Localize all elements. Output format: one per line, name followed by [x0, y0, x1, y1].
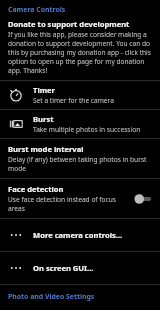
staticText: On screen GUI... — [33, 263, 94, 273]
button[interactable]: On screen GUI... — [0, 252, 160, 284]
staticText: Photo and Video Settings — [8, 292, 95, 301]
button[interactable]: Timer — [0, 81, 160, 109]
staticText: Camera Controls — [8, 5, 66, 14]
staticText: Timer — [33, 85, 55, 95]
staticText: Burst — [33, 114, 54, 124]
staticText: Face detection — [8, 184, 64, 194]
staticText: Donate to support development — [8, 19, 130, 29]
staticText: Burst mode interval — [8, 144, 84, 154]
staticText: Use face detection instead of focus area… — [8, 195, 128, 213]
button[interactable]: Face detection — [0, 179, 160, 218]
button[interactable]: More camera controls... — [0, 219, 160, 251]
other: Burst — [7, 115, 25, 133]
staticText: Set a timer for the camera — [33, 96, 114, 105]
button[interactable]: Burst — [0, 110, 160, 138]
staticText: If you like this app, please consider ma… — [8, 30, 152, 75]
button[interactable]: Donate to support development — [0, 17, 160, 80]
staticText: More camera controls... — [33, 230, 123, 240]
staticText: Delay (if any) between taking photos in … — [8, 155, 152, 173]
staticText: Take multiple photos in succession — [33, 125, 141, 134]
button[interactable]: Face detection toggle — [132, 193, 154, 205]
button[interactable]: Burst mode interval — [0, 139, 160, 178]
other: Timer — [7, 86, 25, 104]
